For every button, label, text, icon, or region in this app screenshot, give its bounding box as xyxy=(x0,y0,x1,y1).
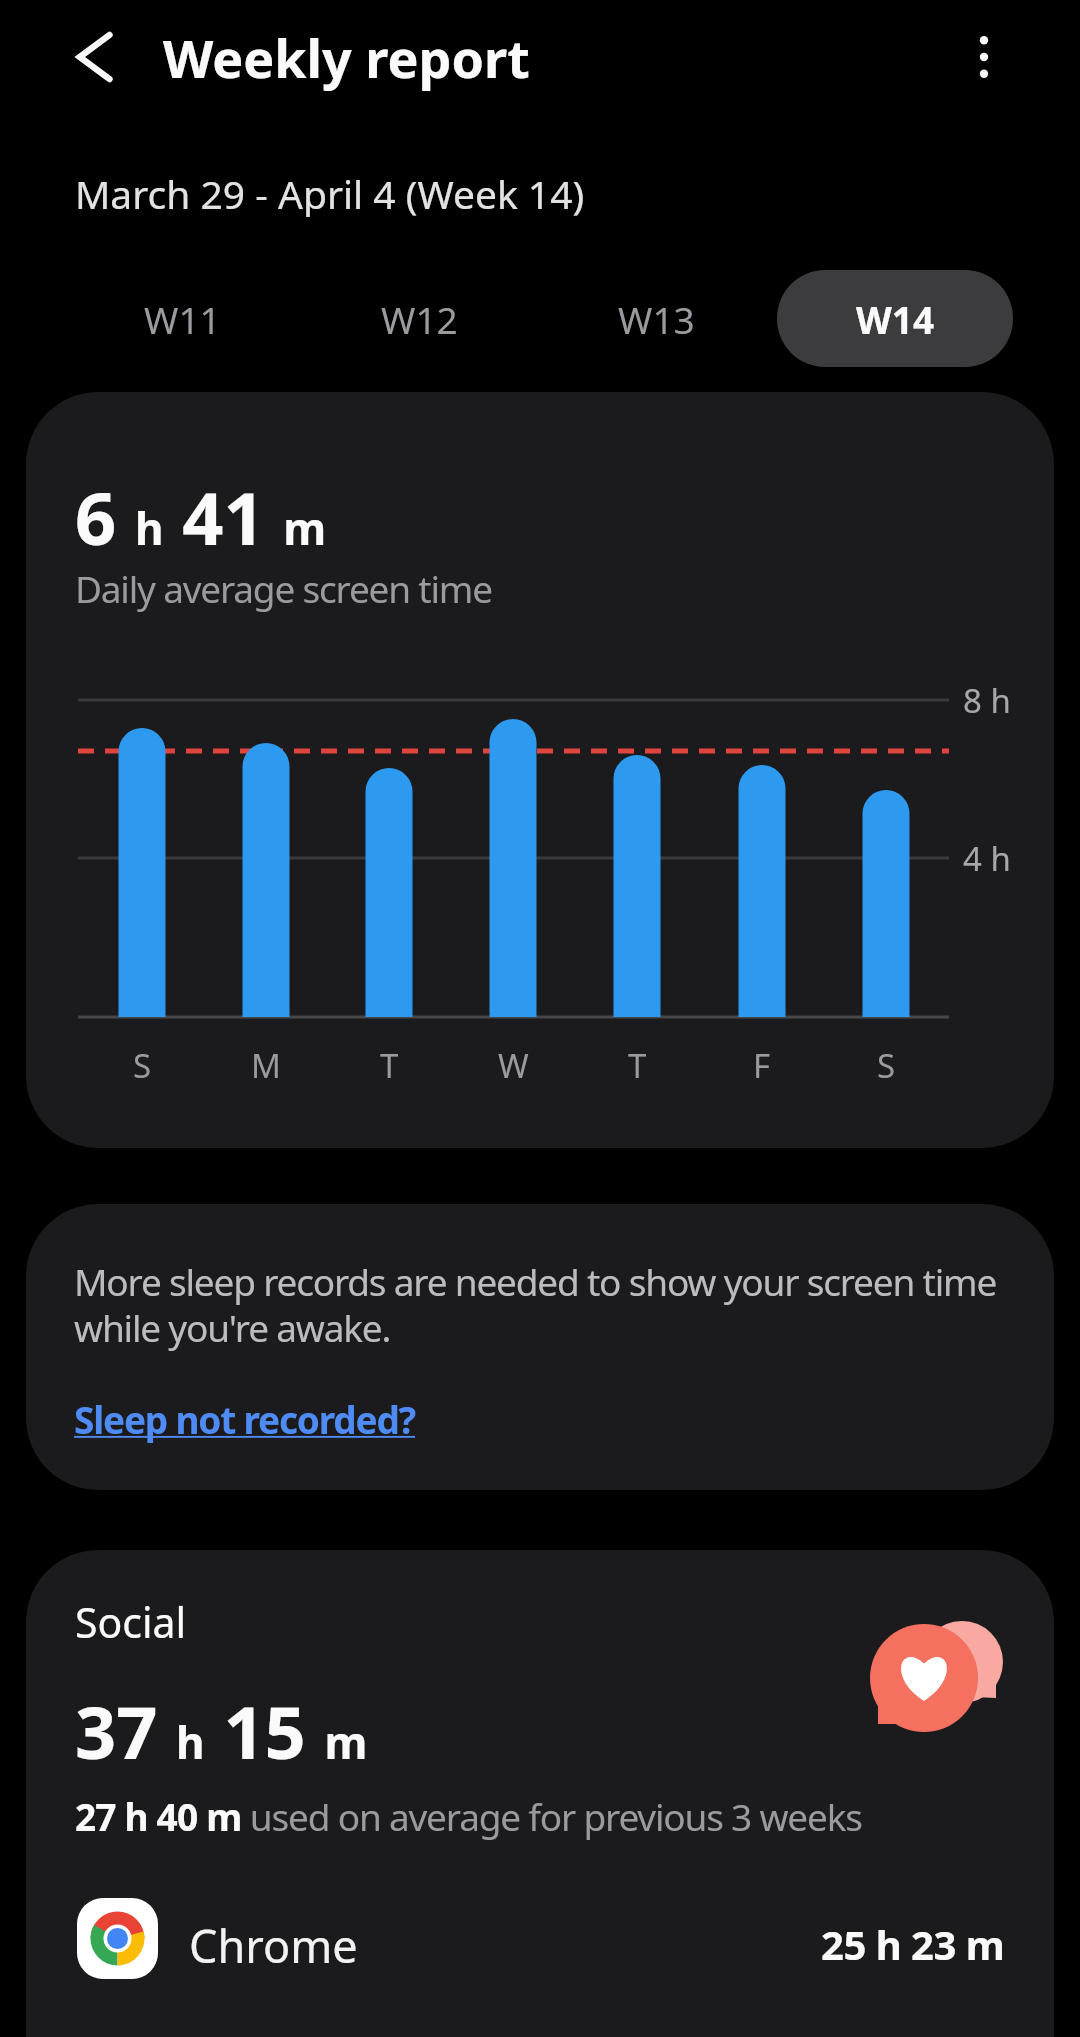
button[interactable]: Sleep not recorded? xyxy=(74,1392,474,1446)
staticText: 8 h xyxy=(963,678,1011,723)
staticText: 37 h 15 m xyxy=(75,1682,368,1778)
staticText: M xyxy=(251,1043,281,1088)
staticText: 25 h 23 m xyxy=(821,1917,1005,1967)
button[interactable] xyxy=(944,17,1024,97)
staticText: Social xyxy=(75,1594,187,1646)
staticText: W xyxy=(498,1043,529,1088)
button[interactable]: W12 xyxy=(303,270,535,367)
staticText: W11 xyxy=(144,294,221,344)
button[interactable]: W13 xyxy=(540,270,772,367)
staticText: W14 xyxy=(856,294,935,344)
staticText: Chrome xyxy=(189,1915,358,1967)
staticText: Sleep not recorded? xyxy=(74,1394,416,1444)
staticText: T xyxy=(628,1043,647,1088)
button[interactable]: W11 xyxy=(66,270,298,367)
staticText: while you're awake. xyxy=(74,1302,391,1352)
staticText: 27 h 40 m used on average for previous 3… xyxy=(75,1791,862,1841)
staticText: Daily average screen time xyxy=(75,563,492,613)
button[interactable] xyxy=(26,1550,1054,2037)
staticText: S xyxy=(877,1043,896,1088)
staticText: T xyxy=(380,1043,399,1088)
button[interactable] xyxy=(60,1880,1020,2000)
staticText: 4 h xyxy=(963,836,1011,881)
staticText: Weekly report xyxy=(163,22,530,93)
staticText: F xyxy=(753,1043,771,1088)
staticText: More sleep records are needed to show yo… xyxy=(74,1256,997,1306)
button[interactable]: W14 xyxy=(777,270,1013,367)
button[interactable] xyxy=(40,17,150,97)
staticText: W13 xyxy=(618,294,695,344)
staticText: 6 h 41 m xyxy=(75,468,327,564)
staticText: March 29 - April 4 (Week 14) xyxy=(75,167,585,217)
staticText: S xyxy=(133,1043,152,1088)
staticText: W12 xyxy=(381,294,458,344)
